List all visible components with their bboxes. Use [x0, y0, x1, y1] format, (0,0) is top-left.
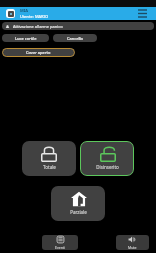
staticText: Attivazione allarme panico — [13, 24, 63, 29]
staticText: Eventi — [55, 245, 66, 250]
staticText: Mute — [128, 245, 137, 250]
button[interactable]: Cover aperto — [2, 48, 75, 57]
staticText: Cover aperto — [26, 50, 51, 55]
button[interactable]: Parziale — [51, 186, 105, 221]
button[interactable]: Eventi — [42, 235, 78, 250]
button[interactable]: Menu — [136, 7, 149, 20]
staticText: Luce cortile — [15, 36, 37, 41]
staticText: Totale — [43, 164, 56, 170]
button[interactable]: Attivazione allarme panico — [2, 22, 154, 30]
staticText: Utente: MARIO — [20, 14, 49, 19]
staticText: MIA — [20, 8, 29, 13]
button[interactable]: Mute — [116, 235, 149, 250]
button[interactable]: Totale — [22, 141, 76, 176]
button[interactable]: Cancello — [53, 34, 97, 42]
staticText: Disinserito — [96, 164, 119, 170]
staticText: Parziale — [70, 209, 87, 215]
staticText: Cancello — [67, 36, 83, 41]
button[interactable]: Disinserito — [80, 141, 134, 176]
button[interactable]: Luce cortile — [2, 34, 49, 42]
